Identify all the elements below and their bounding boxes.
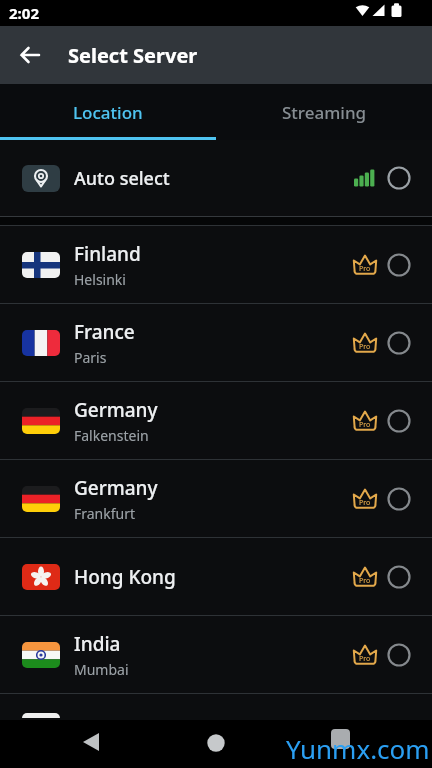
staticText: Yunmx.com — [286, 731, 430, 766]
staticText: Helsinki — [74, 270, 126, 289]
staticText: Pro — [359, 264, 371, 274]
button[interactable] — [0, 720, 144, 768]
staticText: Select Server — [68, 42, 198, 69]
staticText: Falkenstein — [74, 426, 149, 445]
button[interactable] — [288, 720, 432, 768]
staticText: Finland — [74, 241, 141, 267]
staticText: Auto select — [74, 166, 170, 191]
button[interactable]: Streaming — [216, 84, 432, 140]
staticText: Paris — [74, 348, 107, 367]
staticText: Mumbai — [74, 660, 129, 679]
staticText: Pro — [359, 576, 371, 586]
button[interactable] — [12, 37, 48, 73]
staticText: Germany — [74, 475, 158, 501]
staticText: India — [74, 631, 121, 657]
staticText: Pro — [359, 342, 371, 352]
staticText: Frankfurt — [74, 504, 136, 523]
button[interactable]: Germany — [0, 460, 432, 538]
staticText: Pro — [359, 654, 371, 664]
staticText: Pro — [359, 420, 371, 430]
button[interactable]: France — [0, 304, 432, 382]
button[interactable]: India — [0, 616, 432, 694]
staticText: Hong Kong — [74, 564, 176, 590]
button[interactable]: Location — [0, 84, 216, 140]
button[interactable]: Germany — [0, 382, 432, 460]
staticText: France — [74, 319, 135, 345]
staticText: Germany — [74, 397, 158, 423]
staticText: 2:02 — [9, 3, 39, 23]
staticText: Pro — [359, 498, 371, 508]
button[interactable]: Hong Kong — [0, 538, 432, 616]
button[interactable] — [144, 720, 288, 768]
staticText: Location — [73, 101, 143, 124]
button[interactable]: Finland — [0, 226, 432, 304]
staticText: Streaming — [282, 101, 367, 124]
button[interactable]: Auto select — [0, 140, 432, 216]
